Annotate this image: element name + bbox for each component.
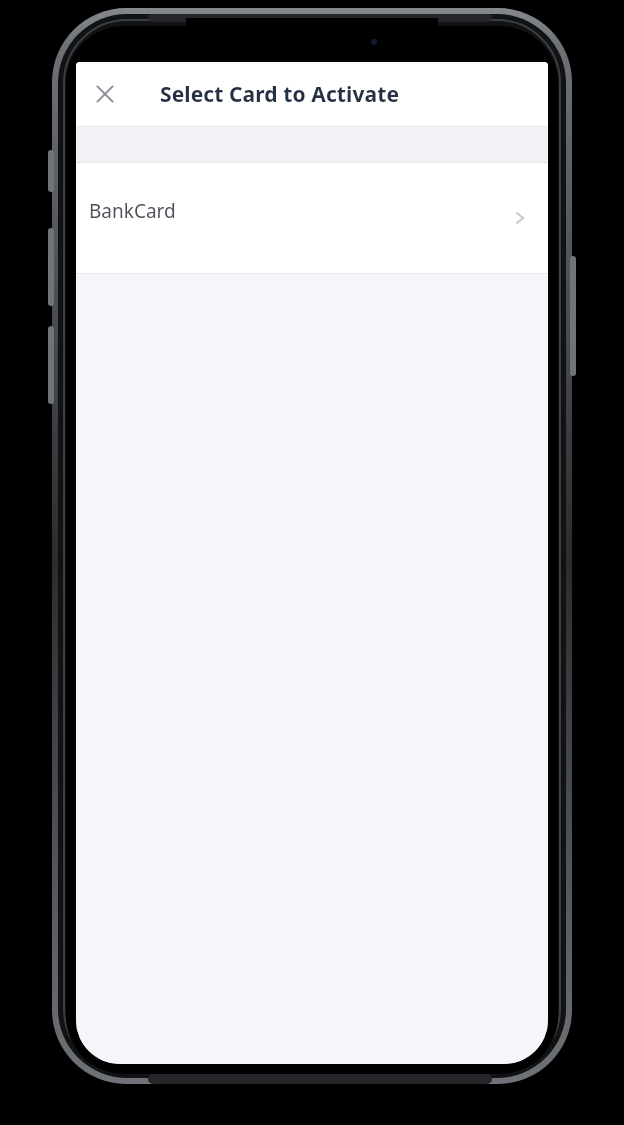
staticText: BankCard — [89, 198, 176, 224]
button[interactable]: Close — [81, 70, 129, 118]
staticText: Select Card to Activate — [160, 80, 400, 109]
button[interactable]: BankCard — [76, 163, 548, 273]
